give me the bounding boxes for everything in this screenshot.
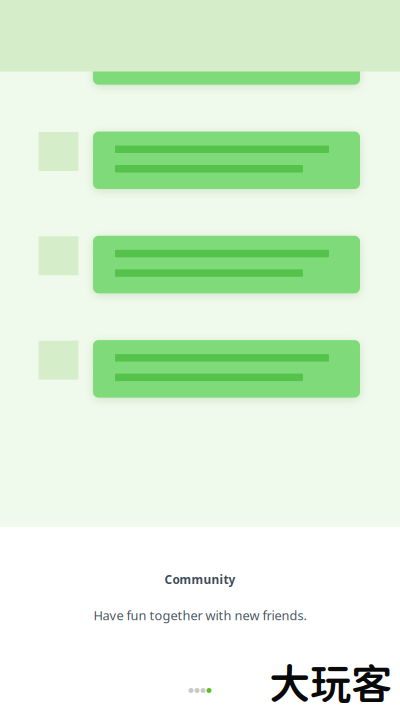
button[interactable]: Conversation — [0, 236, 400, 293]
button[interactable]: Page 4 of 4 — [182, 682, 217, 699]
staticText: Community — [164, 571, 235, 588]
staticText: 大玩客 — [269, 659, 392, 708]
button[interactable]: Conversation — [0, 340, 400, 398]
button[interactable]: Conversation — [0, 27, 400, 85]
button[interactable]: Conversation — [0, 131, 400, 189]
staticText: Have fun together with new friends. — [93, 607, 306, 624]
